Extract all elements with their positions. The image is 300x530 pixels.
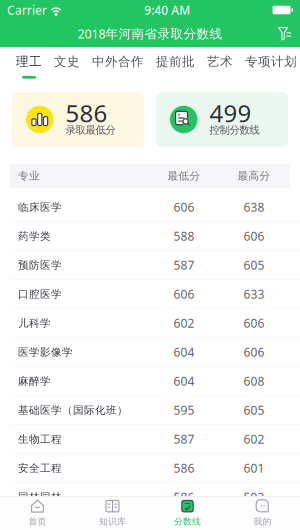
staticText: 586	[173, 489, 194, 505]
staticText: 麻醉学	[18, 375, 51, 388]
staticText: 最高分	[237, 169, 270, 182]
staticText: 638	[243, 199, 264, 215]
staticText: 587	[173, 257, 194, 273]
button[interactable]: 分数线	[150, 497, 225, 530]
button[interactable]: 我的	[225, 497, 300, 530]
staticText: 临床医学	[18, 201, 62, 214]
staticText: 安全工程	[18, 462, 62, 475]
button[interactable]: 提前批	[150, 47, 201, 91]
staticText: 基础医学（国际化班）	[18, 404, 128, 417]
staticText: 我的	[253, 516, 271, 527]
staticText: 606	[243, 315, 264, 331]
staticText: 586	[173, 460, 194, 476]
staticText: 9:40 AM	[144, 2, 190, 18]
button[interactable]: 麻醉学	[0, 367, 300, 396]
staticText: 艺术	[207, 54, 233, 69]
staticText: 633	[243, 286, 264, 302]
button[interactable]: 理工	[10, 47, 48, 91]
button[interactable]: 499	[156, 92, 288, 147]
staticText: 606	[243, 228, 264, 244]
staticText: 专业	[18, 169, 40, 182]
staticText: 儿科学	[18, 317, 51, 330]
staticText: 理工	[16, 54, 42, 69]
staticText: 中外合作	[92, 54, 144, 69]
staticText: Carrier	[7, 2, 47, 18]
staticText: 园林园林	[18, 491, 62, 504]
button[interactable]: 艺术	[201, 47, 239, 91]
staticText: 604	[173, 373, 194, 389]
button[interactable]: 临床医学	[0, 193, 300, 222]
staticText: 知识库	[99, 516, 126, 527]
staticText: 602	[243, 431, 264, 447]
button[interactable]: 筛选	[270, 21, 300, 45]
staticText: 604	[173, 344, 194, 360]
staticText: 专项计划	[245, 54, 297, 69]
staticText: 分数线	[174, 516, 201, 527]
button[interactable]: 基础医学（国际化班）	[0, 396, 300, 425]
staticText: 592	[243, 489, 264, 505]
staticText: 首页	[28, 516, 46, 527]
button[interactable]: 586	[12, 92, 144, 147]
staticText: 587	[173, 431, 194, 447]
staticText: 499	[209, 97, 251, 129]
staticText: 提前批	[156, 54, 195, 69]
staticText: 605	[243, 257, 264, 273]
staticText: 608	[243, 373, 264, 389]
staticText: 药学类	[18, 230, 51, 243]
staticText: 595	[173, 402, 194, 418]
staticText: 口腔医学	[18, 288, 62, 301]
button[interactable]: 医学影像学	[0, 338, 300, 367]
staticText: 2018年河南省录取分数线	[77, 25, 222, 42]
staticText: 586	[65, 97, 107, 129]
button[interactable]: 首页	[0, 497, 75, 530]
button[interactable]: 知识库	[75, 497, 150, 530]
button[interactable]: 文史	[48, 47, 86, 91]
staticText: 控制分数线	[209, 124, 259, 136]
button[interactable]: 儿科学	[0, 309, 300, 338]
button[interactable]: 生物工程	[0, 425, 300, 454]
staticText: 601	[243, 460, 264, 476]
staticText: 588	[173, 228, 194, 244]
staticText: 预防医学	[18, 259, 62, 272]
button[interactable]: 预防医学	[0, 251, 300, 280]
staticText: 605	[243, 402, 264, 418]
staticText: 606	[243, 344, 264, 360]
button[interactable]: 专项计划	[239, 47, 300, 91]
button[interactable]: 口腔医学	[0, 280, 300, 309]
button[interactable]: 中外合作	[86, 47, 150, 91]
staticText: 文史	[54, 54, 80, 69]
staticText: 生物工程	[18, 433, 62, 446]
staticText: 最低分	[167, 169, 200, 182]
button[interactable]: 园林园林	[0, 483, 300, 512]
staticText: 录取最低分	[65, 124, 115, 136]
staticText: 606	[173, 286, 194, 302]
button[interactable]: 安全工程	[0, 454, 300, 483]
staticText: 606	[173, 199, 194, 215]
staticText: 医学影像学	[18, 346, 73, 359]
button[interactable]: 药学类	[0, 222, 300, 251]
staticText: 602	[173, 315, 194, 331]
